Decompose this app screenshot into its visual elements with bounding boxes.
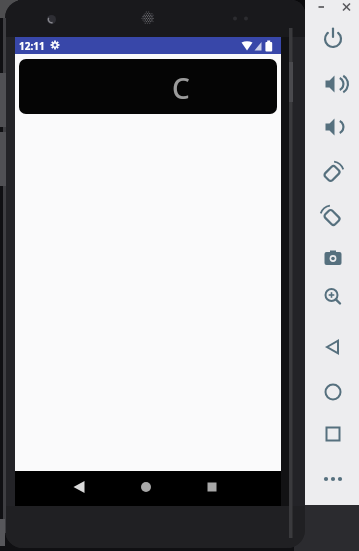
button[interactable] — [63, 471, 94, 502]
staticText: 12:11 — [19, 39, 45, 53]
button[interactable] — [317, 68, 349, 100]
button[interactable] — [317, 281, 349, 313]
button[interactable] — [317, 201, 349, 233]
button[interactable] — [317, 418, 349, 450]
button[interactable] — [317, 463, 349, 495]
button[interactable] — [196, 471, 227, 502]
button[interactable] — [336, 0, 356, 14]
button[interactable]: C — [19, 59, 277, 114]
button[interactable] — [317, 331, 349, 363]
button[interactable] — [317, 111, 349, 143]
button[interactable] — [317, 376, 349, 408]
button[interactable] — [317, 157, 349, 189]
button[interactable] — [311, 0, 331, 14]
button[interactable] — [130, 471, 161, 502]
button[interactable] — [317, 242, 349, 274]
button[interactable] — [317, 23, 349, 55]
staticText: C — [172, 69, 190, 107]
